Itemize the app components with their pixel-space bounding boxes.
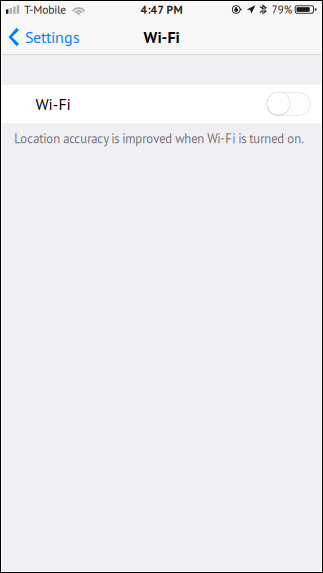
- button[interactable]: Wi-Fi: [0, 85, 323, 123]
- staticText: Settings: [25, 27, 80, 47]
- staticText: T-Mobile: [24, 2, 66, 17]
- staticText: Wi-Fi: [35, 94, 70, 114]
- staticText: 4:47 PM: [140, 2, 182, 17]
- staticText: Location accuracy is improved when Wi-Fi…: [14, 130, 304, 147]
- staticText: Wi-Fi: [143, 27, 179, 47]
- button[interactable]: Settings: [0, 19, 90, 55]
- staticText: 79%: [272, 2, 292, 16]
